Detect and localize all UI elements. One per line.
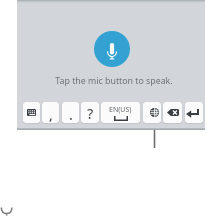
staticText: , [49,105,53,123]
button[interactable]: Enter [185,102,203,123]
button[interactable]: Space [101,102,140,123]
button[interactable]: Switch keyboard [23,102,40,123]
staticText: ? [87,104,94,123]
button[interactable]: Comma [42,102,59,123]
button[interactable]: Period [62,102,79,123]
staticText: EN(US) [109,105,132,115]
staticText: Tap the mic button to speak. [20,75,207,87]
button[interactable]: Microphone [94,31,130,67]
button[interactable]: Change language [143,102,161,123]
button[interactable]: Question mark [81,102,99,123]
button[interactable]: Backspace [163,102,182,123]
staticText: . [69,105,73,123]
